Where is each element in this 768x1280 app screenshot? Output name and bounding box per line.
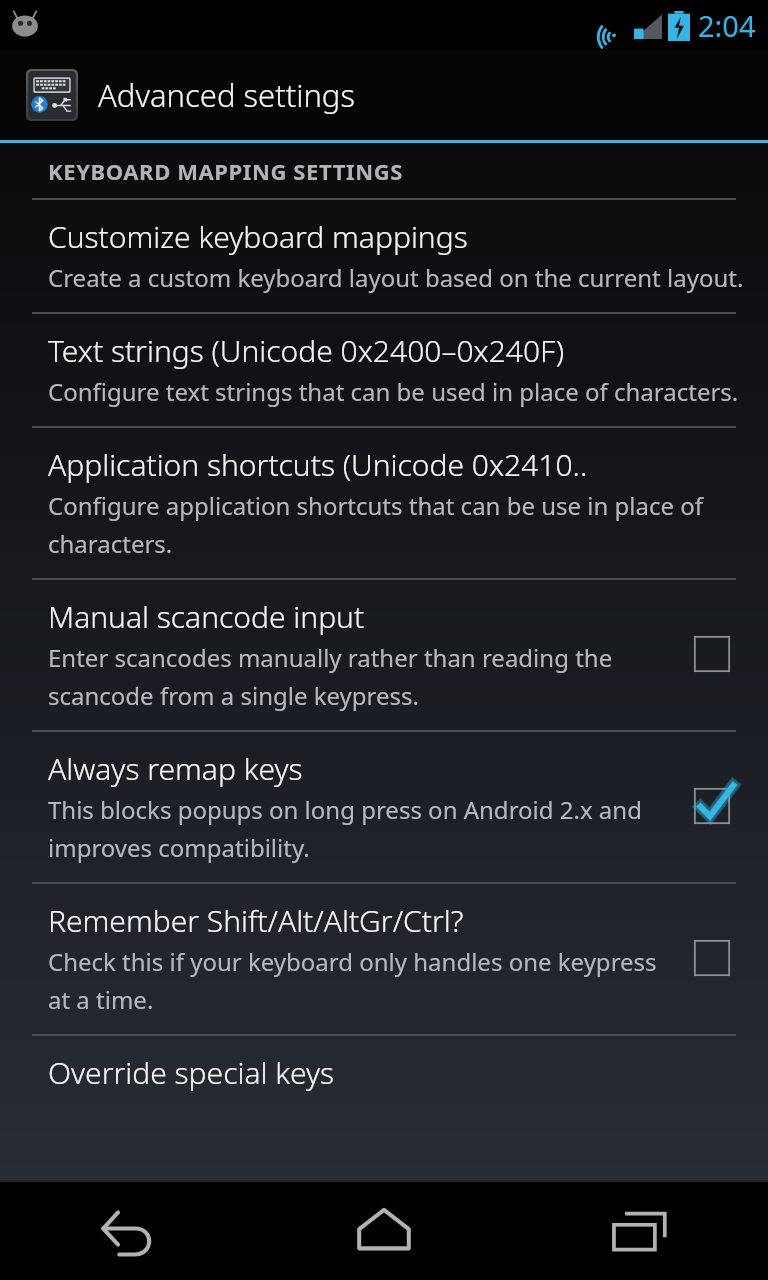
staticText: Enter scancodes manually rather than rea… [48,641,666,712]
staticText: Customize keyboard mappings [48,216,468,257]
staticText: Configure application shortcuts that can… [48,489,744,560]
button[interactable]: Unchecked [680,622,744,686]
button[interactable]: Recent apps [512,1182,768,1280]
button[interactable]: Manual scancode input [0,580,768,730]
button[interactable]: Advanced settings [0,50,768,140]
staticText: KEYBOARD MAPPING SETTINGS [48,156,403,186]
button[interactable]: Back [0,1182,256,1280]
button[interactable]: Override special keys [0,1036,768,1111]
staticText: Application shortcuts (Unicode 0x2410.. [48,444,588,485]
staticText: Text strings (Unicode 0x2400–0x240F) [48,330,565,371]
button[interactable]: Remember Shift/Alt/AltGr/Ctrl? [0,884,768,1034]
staticText: Always remap keys [48,748,303,789]
staticText: Advanced settings [98,74,355,116]
staticText: This blocks popups on long press on Andr… [48,793,666,864]
button[interactable]: Application shortcuts (Unicode 0x2410.. [0,428,768,578]
button[interactable]: Checked [680,774,744,838]
button[interactable]: Always remap keys [0,732,768,882]
staticText: Configure text strings that can be used … [48,375,739,408]
button[interactable]: Home [256,1182,512,1280]
button[interactable]: Customize keyboard mappings [0,200,768,312]
staticText: Check this if your keyboard only handles… [48,945,666,1016]
staticText: 2:04 [698,6,756,45]
staticText: Override special keys [48,1052,335,1093]
staticText: Remember Shift/Alt/AltGr/Ctrl? [48,900,464,941]
staticText: Manual scancode input [48,596,365,637]
button[interactable]: Unchecked [680,926,744,990]
staticText: Create a custom keyboard layout based on… [48,261,744,294]
button[interactable]: Text strings (Unicode 0x2400–0x240F) [0,314,768,426]
